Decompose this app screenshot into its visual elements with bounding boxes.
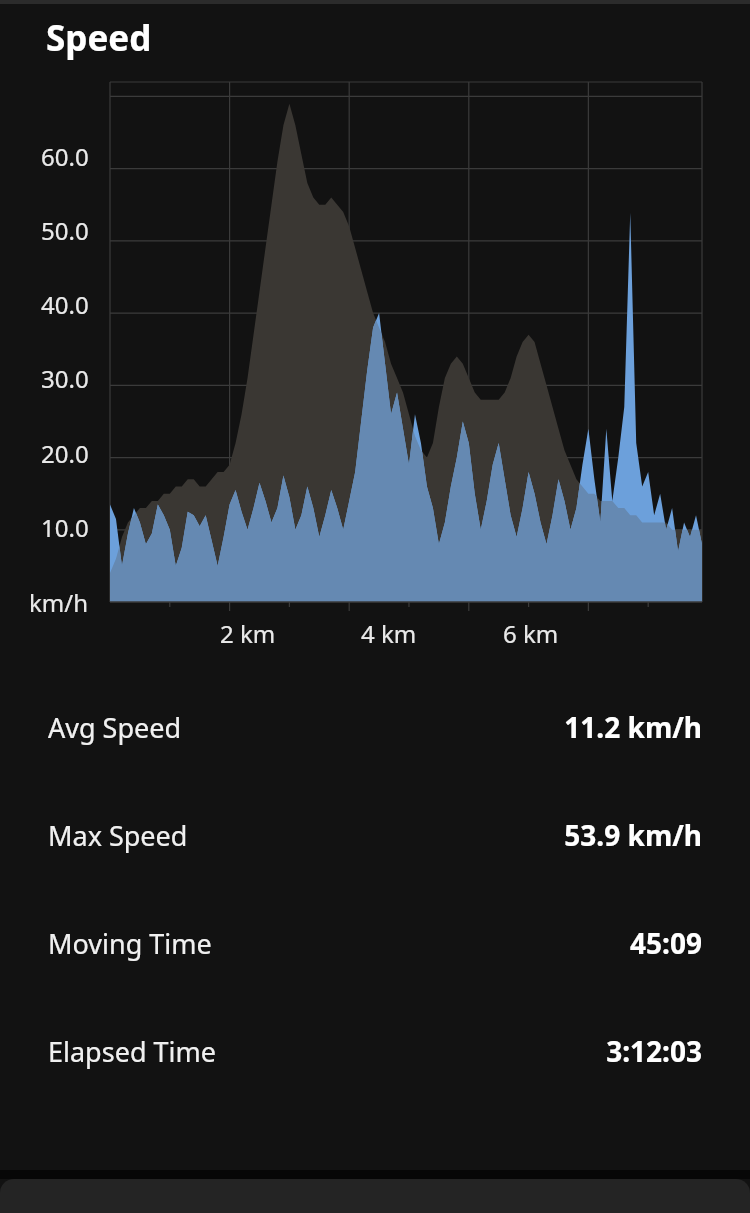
staticText: 60.0 <box>41 140 89 173</box>
staticText: 40.0 <box>41 288 89 321</box>
button[interactable]: Max Speed <box>0 781 750 889</box>
staticText: 30.0 <box>41 362 89 395</box>
button[interactable]: Elapsed Time <box>0 997 750 1105</box>
staticText: 11.2 km/h <box>190 708 702 746</box>
staticText: km/h <box>29 586 89 619</box>
staticText: 50.0 <box>41 214 89 247</box>
staticText: Avg Speed <box>48 709 182 746</box>
staticText: 10.0 <box>41 511 89 544</box>
button[interactable]: Moving Time <box>0 889 750 997</box>
staticText: 53.9 km/h <box>196 816 702 854</box>
staticText: 3:12:03 <box>224 1032 702 1070</box>
staticText: 45:09 <box>220 924 702 962</box>
staticText: 4 km <box>361 617 417 650</box>
button[interactable]: Avg Speed <box>0 673 750 781</box>
staticText: Elapsed Time <box>48 1033 216 1070</box>
staticText: 20.0 <box>41 437 89 470</box>
staticText: Max Speed <box>48 817 188 854</box>
staticText: Moving Time <box>48 925 212 962</box>
staticText: Speed <box>46 14 152 62</box>
staticText: 6 km <box>503 617 559 650</box>
staticText: 2 km <box>220 617 276 650</box>
